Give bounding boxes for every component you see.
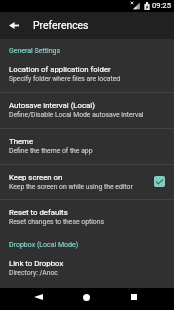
staticText: Location of application folder — [9, 65, 111, 74]
staticText: Keep screen on — [9, 173, 63, 182]
button[interactable]: Home — [65, 288, 109, 310]
button[interactable]: Recent apps — [112, 288, 156, 310]
button[interactable]: Autosave interval (Local) — [0, 93, 174, 129]
staticText: Directory: /Anoc — [9, 269, 58, 277]
staticText: Keep the screen on while using the edito… — [9, 183, 133, 191]
staticText: Theme — [9, 137, 34, 146]
staticText: Preferences — [33, 19, 89, 31]
button[interactable]: Location of application folder — [0, 57, 174, 93]
staticText: Specify folder where files are located — [9, 75, 121, 83]
button[interactable]: Theme — [0, 129, 174, 165]
staticText: Link to Dropbox — [9, 259, 64, 268]
staticText: 09:25 — [152, 1, 171, 10]
staticText: Dropbox (Local Mode) — [9, 241, 79, 249]
staticText: Autosave interval (Local) — [9, 101, 95, 110]
button[interactable]: Back — [17, 288, 61, 310]
button[interactable]: Link to Dropbox — [0, 251, 174, 288]
button[interactable]: Reset to defaults — [0, 200, 174, 236]
staticText: Reset to defaults — [9, 208, 68, 217]
staticText: Reset changes to these options — [9, 218, 104, 226]
button[interactable]: Navigate up — [0, 13, 26, 39]
staticText: Define the theme of the app — [9, 147, 93, 155]
button[interactable]: Keep screen on — [0, 165, 174, 200]
staticText: General Settings — [9, 47, 61, 55]
staticText: Define/Disable Local Mode autosave inter… — [9, 111, 144, 119]
